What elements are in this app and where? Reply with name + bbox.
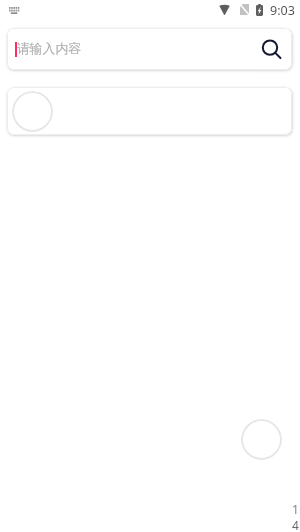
button[interactable]: Add — [241, 419, 282, 460]
button[interactable]: 请输入内容 — [7, 28, 292, 70]
staticText: 9:03 — [270, 2, 295, 19]
staticText: 请输入内容 — [17, 41, 81, 57]
staticText: 4 — [292, 517, 299, 532]
button[interactable] — [7, 87, 292, 135]
other: Search — [259, 37, 283, 61]
staticText: 1 — [292, 501, 299, 517]
